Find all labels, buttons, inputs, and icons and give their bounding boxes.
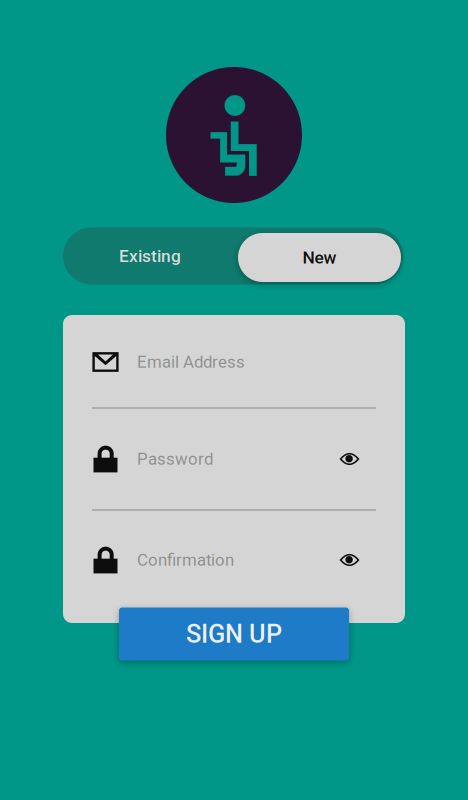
staticText: SIGN UP [186,619,282,649]
staticText: Confirmation [137,550,234,570]
button[interactable]: Show password [334,545,364,575]
staticText: New [302,247,336,268]
staticText: Password [137,449,213,469]
button[interactable]: Existing [63,227,237,284]
staticText: Email Address [137,352,245,372]
button[interactable]: SIGN UP [119,607,349,660]
staticText: Existing [119,246,181,266]
button[interactable]: Show password [334,444,364,474]
button[interactable]: New [238,233,401,282]
